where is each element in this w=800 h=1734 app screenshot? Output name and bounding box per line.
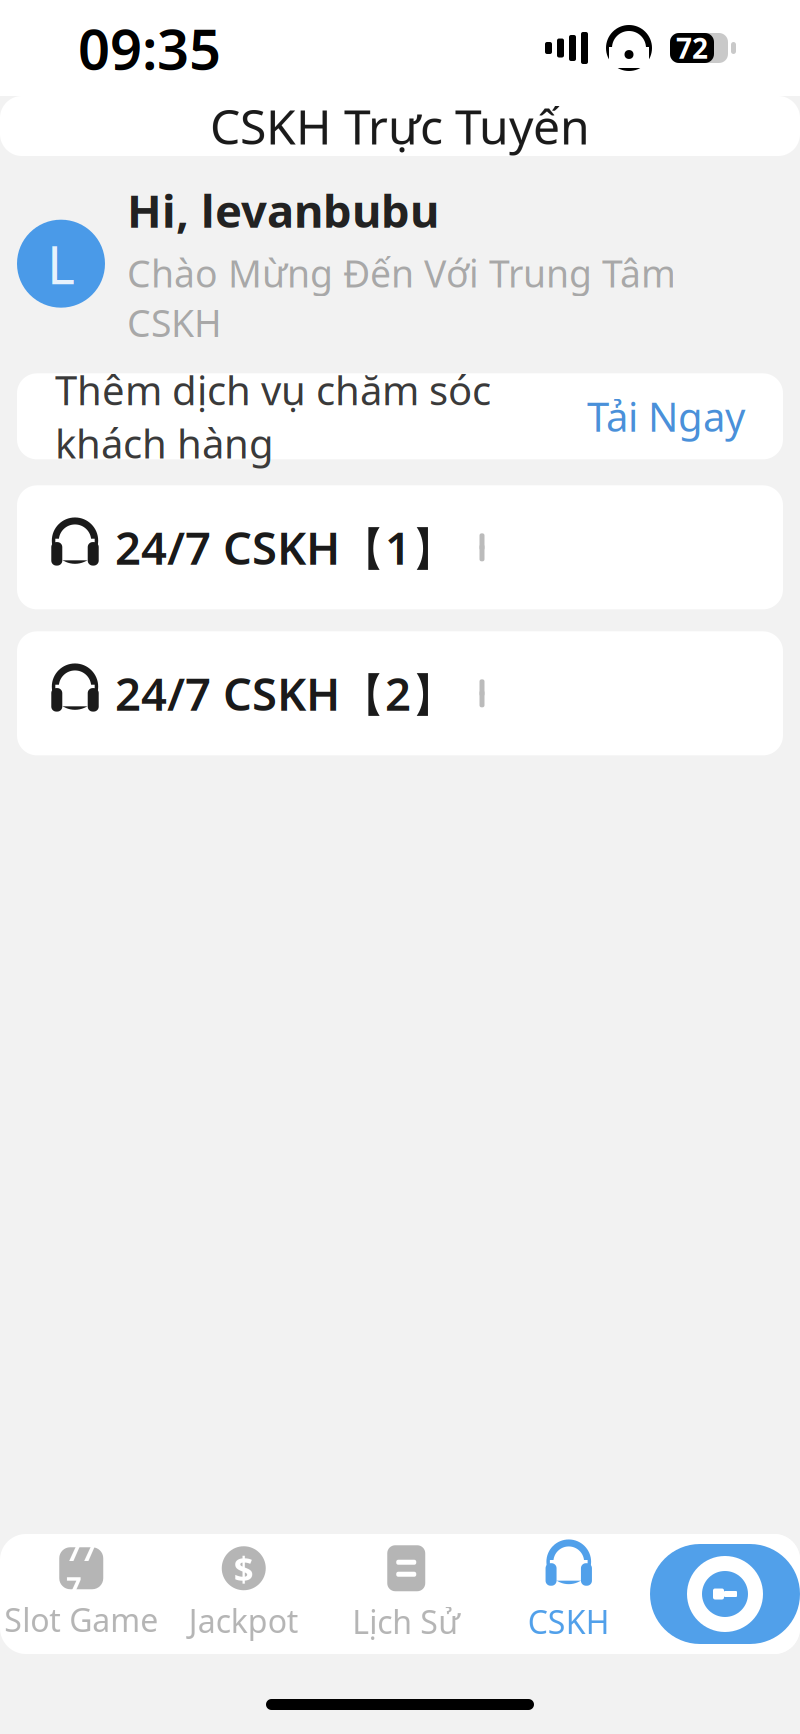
staticText: CSKH Trực Tuyến <box>210 94 590 158</box>
button[interactable]: Thu gọn <box>650 1544 800 1644</box>
staticText: Chào Mừng Đến Với Trung Tâm CSKH <box>127 248 676 347</box>
button[interactable]: 24/7 CSKH【1】 <box>0 485 800 609</box>
staticText: 09:35 <box>78 11 221 85</box>
button[interactable]: CSKH <box>487 1534 650 1654</box>
staticText: Tải Ngay <box>587 390 745 443</box>
button[interactable]: $ <box>162 1534 325 1654</box>
staticText: L <box>47 228 75 299</box>
staticText: Lịch Sử <box>352 1600 460 1643</box>
staticText: 72 <box>676 29 708 67</box>
staticText: CSKH <box>528 1600 610 1643</box>
staticText: Hi, levanbubu <box>127 180 439 240</box>
staticText: 24/7 CSKH【2】 <box>115 663 456 723</box>
staticText: 24/7 CSKH【1】 <box>115 517 456 577</box>
button[interactable]: Lịch Sử <box>325 1534 487 1654</box>
staticText: Slot Game <box>4 1598 158 1641</box>
staticText: 777 <box>66 1533 96 1604</box>
button[interactable]: 777 <box>0 1534 162 1654</box>
staticText: Thêm dịch vụ chăm sóc khách hàng <box>55 363 491 469</box>
staticText: Jackpot <box>189 1599 299 1642</box>
staticText: $ <box>234 1545 254 1591</box>
button[interactable]: 24/7 CSKH【2】 <box>0 631 800 755</box>
button[interactable]: Thêm dịch vụ chăm sóc khách hàng <box>0 373 800 459</box>
